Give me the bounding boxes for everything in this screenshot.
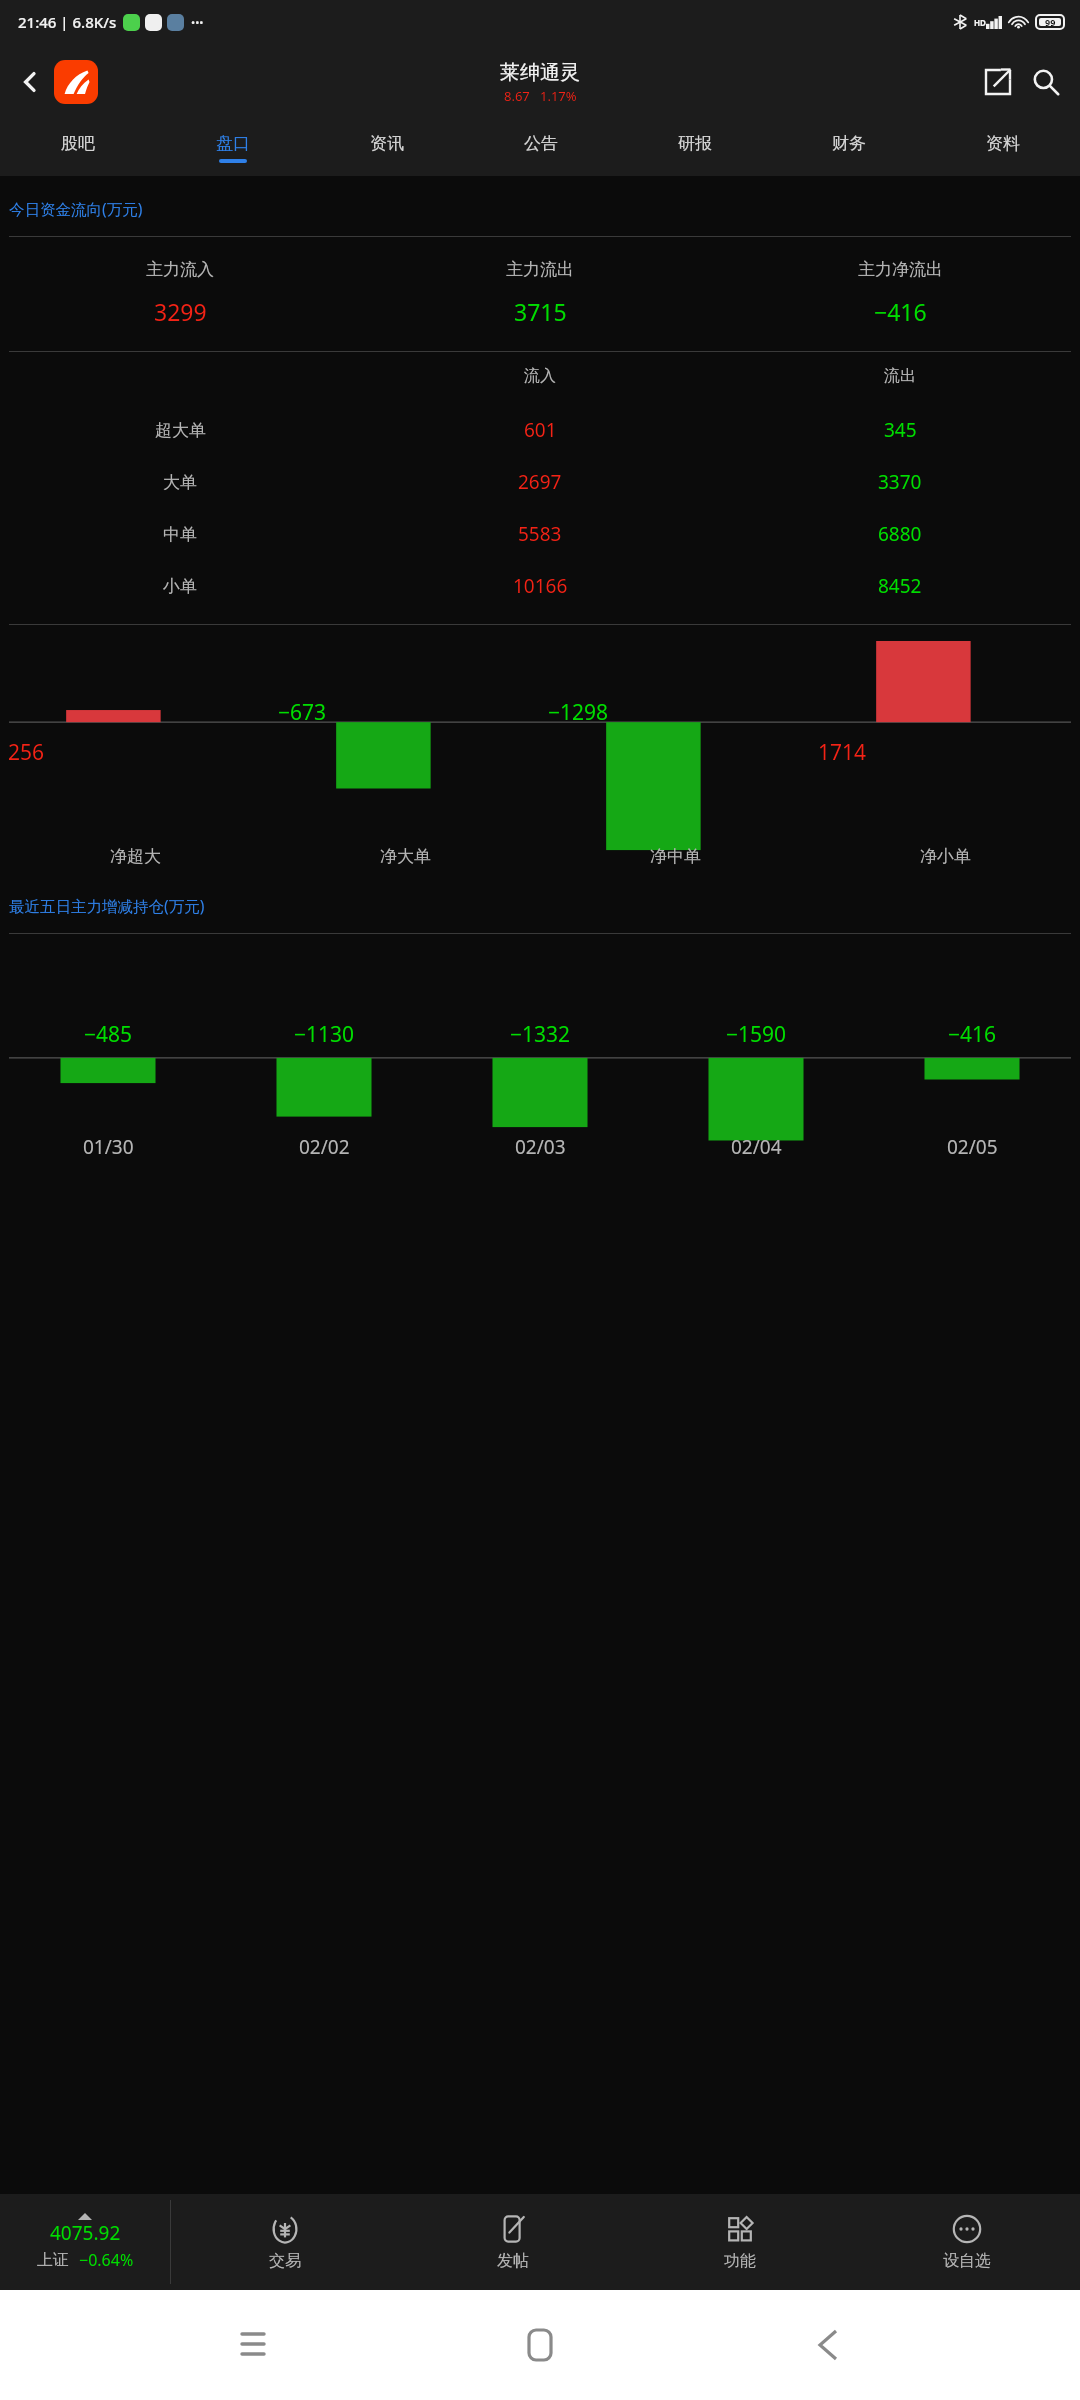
staticText: 5583: [518, 521, 562, 547]
staticText: 2697: [518, 469, 562, 495]
button[interactable]: App logo: [54, 60, 98, 104]
staticText: −673: [278, 698, 327, 727]
staticText: 上证: [37, 2250, 69, 2270]
staticText: 02/05: [947, 1134, 998, 1160]
staticText: 净小单: [920, 846, 971, 867]
staticText: 02/03: [515, 1134, 566, 1160]
button[interactable]: 研报: [618, 120, 772, 176]
staticText: −416: [874, 296, 927, 327]
button[interactable]: Back: [793, 2310, 863, 2380]
staticText: 10166: [513, 573, 568, 599]
staticText: 小单: [163, 576, 197, 597]
button[interactable]: 交易: [171, 2194, 399, 2290]
staticText: 莱绅通灵: [500, 60, 580, 85]
button[interactable]: 4075.92: [0, 2194, 170, 2290]
staticText: 99: [1045, 16, 1056, 28]
button[interactable]: 功能: [626, 2194, 853, 2290]
staticText: −1130: [294, 1020, 355, 1049]
staticText: −416: [948, 1020, 997, 1049]
staticText: 流入: [524, 366, 556, 386]
staticText: 3370: [878, 469, 922, 495]
staticText: 超大单: [155, 420, 206, 441]
button[interactable]: 发帖: [399, 2194, 626, 2290]
staticText: 净超大: [110, 846, 161, 867]
staticText: 8.67: [504, 87, 530, 105]
staticText: −1332: [510, 1020, 571, 1049]
button[interactable]: 小单: [0, 560, 1080, 612]
staticText: 股吧: [61, 133, 95, 154]
staticText: 3715: [514, 296, 567, 327]
staticText: −1298: [548, 698, 609, 727]
staticText: 21:46 | 6.8K/s: [18, 12, 117, 32]
staticText: 资讯: [370, 133, 404, 154]
staticText: 净大单: [380, 846, 431, 867]
staticText: 02/04: [731, 1134, 782, 1160]
staticText: 6880: [878, 521, 922, 547]
staticText: 大单: [163, 472, 197, 493]
button[interactable]: 资料: [926, 120, 1080, 176]
staticText: 设自选: [943, 2251, 991, 2271]
staticText: 1714: [818, 738, 867, 767]
staticText: 功能: [724, 2251, 756, 2271]
button[interactable]: Share: [974, 58, 1022, 106]
button[interactable]: 公告: [464, 120, 618, 176]
button[interactable]: Back: [8, 60, 52, 104]
staticText: 研报: [678, 133, 712, 154]
staticText: −0.64%: [79, 2249, 134, 2271]
staticText: •••: [191, 15, 204, 30]
staticText: 中单: [163, 524, 197, 545]
staticText: 601: [524, 417, 557, 443]
staticText: 主力流出: [506, 259, 574, 280]
staticText: −1590: [726, 1020, 787, 1049]
staticText: 交易: [269, 2251, 301, 2271]
staticText: 流出: [884, 366, 916, 386]
staticText: 1.17%: [540, 87, 577, 105]
staticText: 公告: [524, 133, 558, 154]
button[interactable]: Recents: [218, 2310, 288, 2380]
button[interactable]: 中单: [0, 508, 1080, 560]
staticText: 资料: [986, 133, 1020, 154]
staticText: 财务: [832, 133, 866, 154]
staticText: −485: [84, 1020, 133, 1049]
button[interactable]: 财务: [772, 120, 926, 176]
staticText: 发帖: [497, 2251, 529, 2271]
staticText: 主力流入: [146, 259, 214, 280]
button[interactable]: 盘口: [155, 120, 310, 176]
staticText: 主力净流出: [858, 259, 943, 280]
staticText: 今日资金流向(万元): [9, 198, 143, 219]
staticText: HD: [974, 17, 986, 28]
button[interactable]: 资讯: [310, 120, 464, 176]
staticText: 345: [884, 417, 917, 443]
button[interactable]: 股吧: [0, 120, 155, 176]
staticText: 256: [8, 738, 45, 767]
staticText: 最近五日主力增减持仓(万元): [9, 895, 205, 916]
staticText: 01/30: [83, 1134, 134, 1160]
button[interactable]: Search: [1022, 58, 1070, 106]
button[interactable]: 超大单: [0, 404, 1080, 456]
staticText: 3299: [154, 296, 207, 327]
staticText: 02/02: [299, 1134, 350, 1160]
button[interactable]: 设自选: [853, 2194, 1080, 2290]
button[interactable]: Home: [505, 2310, 575, 2380]
staticText: 8452: [878, 573, 922, 599]
button[interactable]: 大单: [0, 456, 1080, 508]
staticText: 盘口: [216, 133, 250, 154]
staticText: 4075.92: [50, 2220, 121, 2246]
staticText: 净中单: [650, 846, 701, 867]
